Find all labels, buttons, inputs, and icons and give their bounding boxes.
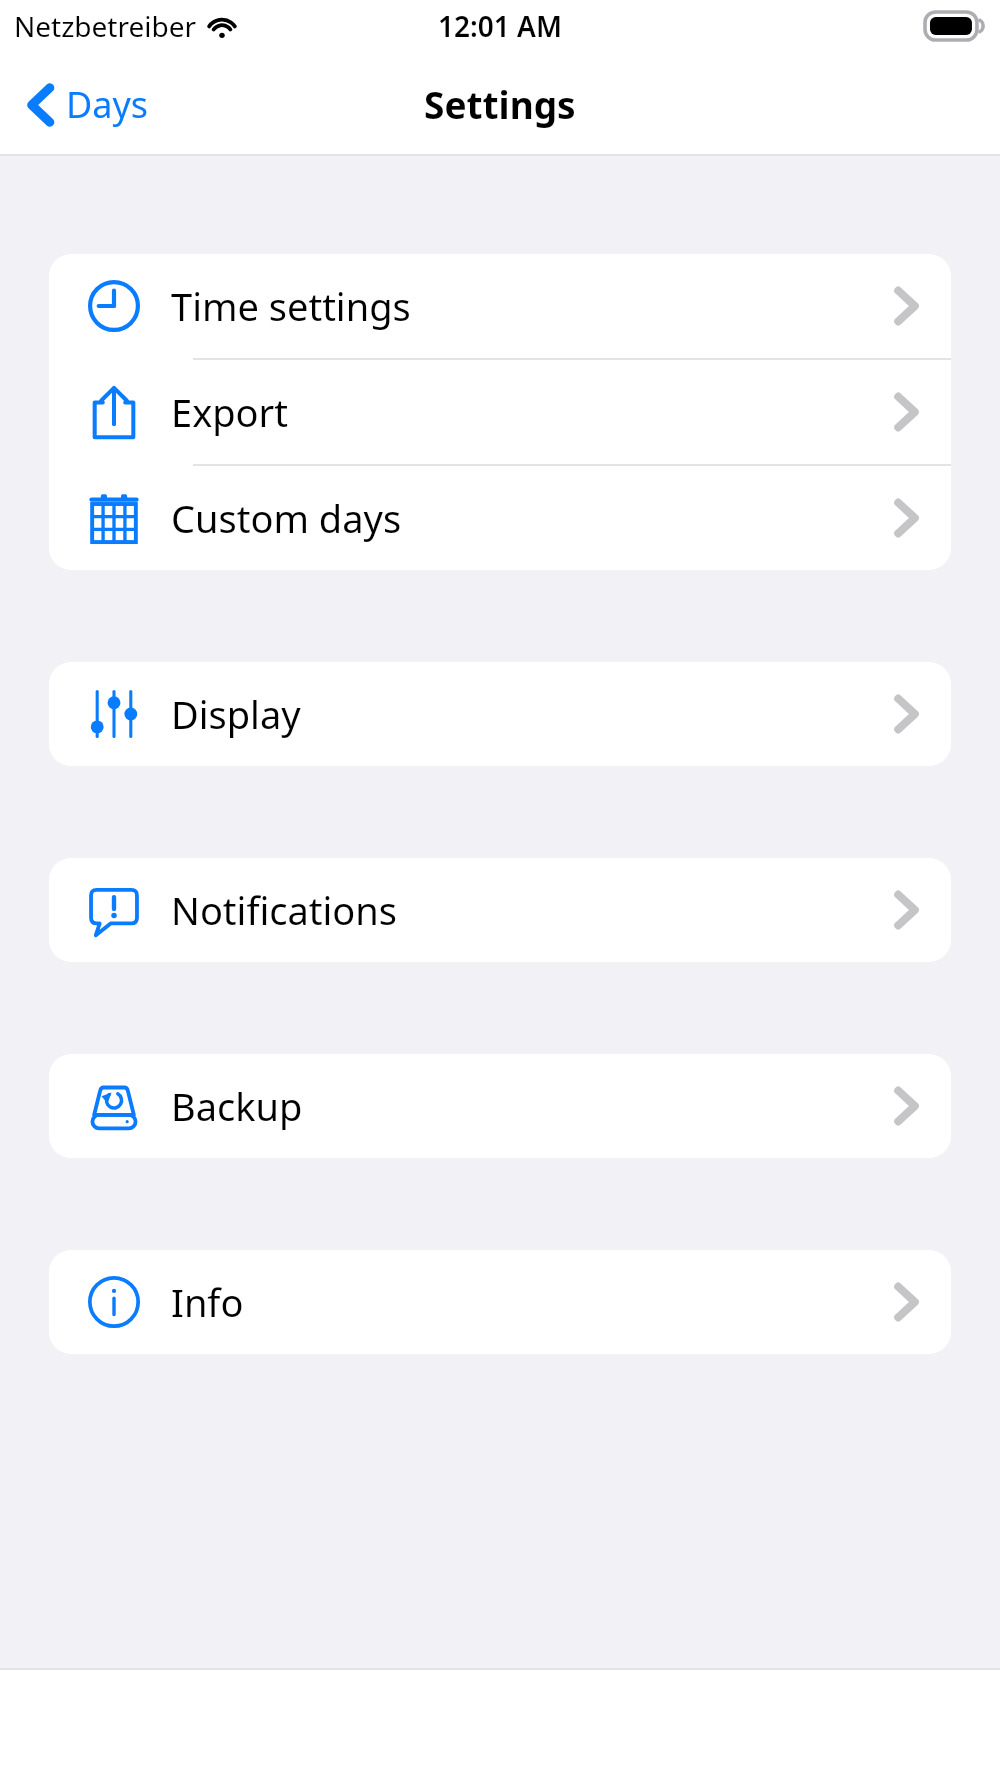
button[interactable]: Notifications bbox=[49, 858, 951, 962]
button[interactable]: Custom days bbox=[49, 466, 951, 570]
staticText: Custom days bbox=[171, 492, 402, 544]
button[interactable]: Export bbox=[49, 360, 951, 464]
staticText: Netzbetreiber bbox=[14, 7, 197, 45]
other: Export bbox=[86, 384, 142, 440]
button[interactable]: Display bbox=[49, 662, 951, 766]
button[interactable]: Time settings bbox=[49, 254, 951, 358]
staticText: Info bbox=[171, 1276, 244, 1328]
other: Time settings bbox=[86, 278, 142, 334]
staticText: Notifications bbox=[171, 884, 398, 936]
staticText: Time settings bbox=[171, 280, 411, 332]
button[interactable]: Backup bbox=[49, 1054, 951, 1158]
other: Notifications bbox=[86, 882, 142, 938]
staticText: Settings bbox=[424, 79, 576, 129]
other: Backup bbox=[86, 1078, 142, 1134]
button[interactable]: Days bbox=[22, 70, 155, 139]
staticText: Display bbox=[171, 688, 301, 740]
other: Info bbox=[86, 1274, 142, 1330]
other: Custom days bbox=[86, 490, 142, 546]
button[interactable]: Info bbox=[49, 1250, 951, 1354]
staticText: 12:01 AM bbox=[438, 7, 562, 45]
staticText: Days bbox=[66, 80, 149, 129]
staticText: Export bbox=[171, 386, 289, 438]
other: Display bbox=[86, 686, 142, 742]
staticText: Backup bbox=[171, 1080, 303, 1132]
